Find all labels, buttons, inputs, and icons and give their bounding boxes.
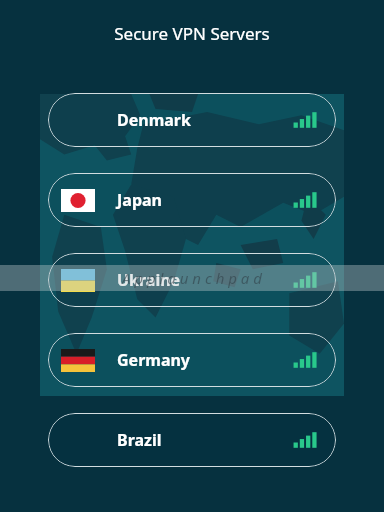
staticText: Secure VPN Servers: [0, 22, 384, 45]
other: Signal strength: [292, 107, 318, 133]
button[interactable]: Germany: [48, 333, 336, 387]
other: Signal strength: [292, 267, 318, 293]
staticText: Japan: [117, 189, 162, 211]
staticText: Brazil: [117, 429, 162, 451]
button[interactable]: Japan: [48, 173, 336, 227]
other: Signal strength: [292, 427, 318, 453]
other: Signal strength: [292, 187, 318, 213]
staticText: Germany: [117, 349, 191, 371]
button[interactable]: Ukraine: [48, 253, 336, 307]
staticText: Denmark: [117, 109, 191, 131]
staticText: Ukraine: [117, 269, 181, 291]
staticText: A p p l a u n c h p a d: [122, 268, 262, 288]
button[interactable]: Brazil: [48, 413, 336, 467]
other: Signal strength: [292, 347, 318, 373]
button[interactable]: Denmark: [48, 93, 336, 147]
